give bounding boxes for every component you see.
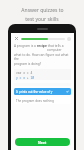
staticText: It prints out the value of y (16, 90, 53, 94)
button[interactable]: Next (15, 138, 70, 146)
button[interactable]: It prints out the value of y (14, 88, 71, 95)
staticText: Next (38, 140, 47, 145)
staticText: The program does nothing (16, 99, 54, 103)
button[interactable]: The program does nothing (14, 97, 71, 104)
staticText: Answer quizzes to (21, 7, 64, 14)
staticText: that tells a computer (47, 44, 71, 52)
staticText: A program is a (14, 44, 37, 48)
staticText: recipe (37, 44, 47, 48)
staticText: var x = 4 (16, 71, 33, 75)
staticText: y = x + 10 (16, 76, 35, 80)
staticText: test your skills (25, 16, 59, 23)
button[interactable]: Profile (67, 37, 71, 41)
button[interactable]: Close (14, 36, 19, 41)
staticText: what to do. How can figure out what the (14, 53, 71, 61)
staticText: program is doing? (14, 62, 42, 66)
